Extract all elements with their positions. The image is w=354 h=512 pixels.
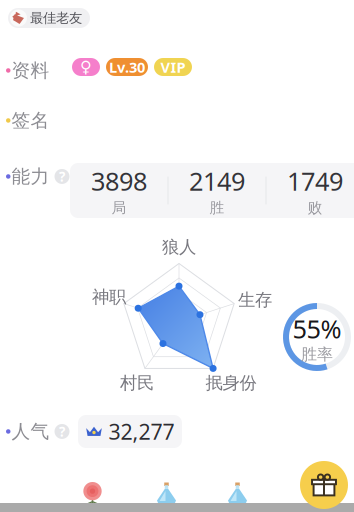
staticText: 胜 bbox=[209, 199, 224, 217]
staticText: ♀ bbox=[80, 58, 92, 76]
staticText: 神职 bbox=[92, 286, 126, 308]
staticText: 生存 bbox=[238, 289, 272, 311]
staticText: 32,277 bbox=[108, 417, 174, 446]
button[interactable]: Potion gift bbox=[225, 481, 250, 506]
staticText: 抿身份 bbox=[205, 372, 256, 394]
staticText: 局 bbox=[111, 199, 126, 217]
staticText: 1749 bbox=[287, 164, 343, 198]
staticText: 能力 bbox=[11, 165, 49, 188]
button[interactable]: Send gift bbox=[300, 461, 348, 509]
staticText: 狼人 bbox=[162, 236, 196, 258]
staticText: VIP bbox=[160, 57, 185, 77]
staticText: ? bbox=[59, 168, 65, 185]
staticText: 败 bbox=[307, 199, 322, 217]
staticText: Lv.30 bbox=[109, 57, 145, 77]
button[interactable]: Potion gift bbox=[154, 481, 179, 506]
button[interactable]: Rose gift bbox=[79, 479, 106, 506]
staticText: ? bbox=[59, 423, 65, 440]
staticText: 人气 bbox=[11, 420, 49, 443]
staticText: 2149 bbox=[189, 164, 245, 198]
button[interactable]: 最佳老友 bbox=[8, 8, 90, 28]
staticText: 55% bbox=[292, 312, 341, 345]
staticText: 资料 bbox=[11, 59, 49, 82]
staticText: 村民 bbox=[120, 372, 154, 394]
staticText: 最佳老友 bbox=[30, 10, 82, 26]
staticText: 胜率 bbox=[301, 344, 333, 364]
staticText: 签名 bbox=[11, 109, 49, 132]
staticText: 3898 bbox=[91, 164, 147, 198]
